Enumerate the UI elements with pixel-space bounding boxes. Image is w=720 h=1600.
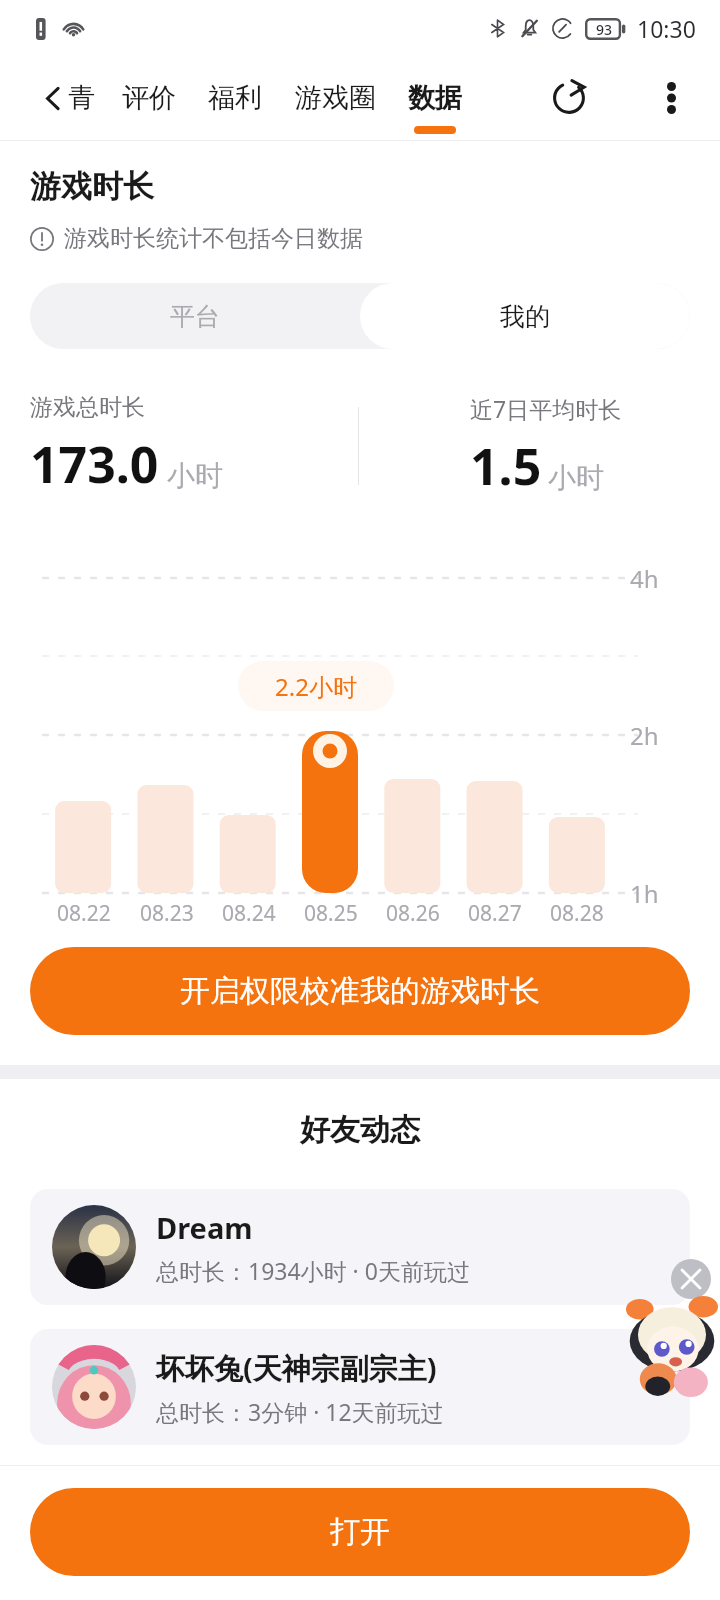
staticText: 数据 [408,81,462,115]
button[interactable]: Back [30,75,76,121]
staticText: 08.24 [222,899,276,928]
button[interactable]: 平台 [30,283,360,349]
button[interactable]: Refresh [542,71,596,125]
staticText: 2h [630,719,659,752]
button[interactable]: More options [648,75,694,121]
button[interactable]: Dream [30,1189,690,1305]
button[interactable]: 游戏圈 [290,61,380,135]
staticText: 小时 [167,458,223,493]
staticText: 173.0 [30,430,159,498]
button[interactable]: 福利 [204,61,266,135]
staticText: 08.27 [468,899,522,928]
staticText: 青 [68,81,95,115]
button[interactable]: 评价 [118,61,180,135]
staticText: 我的 [500,301,550,332]
staticText: 坏坏兔(天神宗副宗主) [156,1348,437,1388]
staticText: 福利 [208,81,262,115]
staticText: 1h [630,877,659,910]
staticText: 08.28 [550,899,604,928]
staticText: 好友动态 [300,1111,420,1149]
staticText: 小时 [548,460,604,495]
button[interactable]: 坏坏兔(天神宗副宗主) [30,1329,690,1445]
staticText: 开启权限校准我的游戏时长 [180,972,540,1010]
button[interactable]: 我的 [360,283,690,349]
staticText: 93 [596,20,613,39]
staticText: 平台 [170,301,220,332]
button[interactable]: Close [671,1259,711,1299]
staticText: 游戏时长统计不包括今日数据 [64,224,363,253]
button[interactable]: Assistant [626,1296,718,1398]
staticText: 08.25 [304,899,358,928]
button[interactable]: 打开 [30,1488,690,1576]
staticText: 08.22 [57,899,111,928]
staticText: 游戏总时长 [30,393,145,422]
staticText: Dream [156,1208,253,1247]
staticText: 08.26 [386,899,440,928]
staticText: 打开 [330,1513,390,1551]
staticText: 1.5 [470,432,542,500]
staticText: 总时长：1934小时 · 0天前玩过 [156,1255,470,1286]
staticText: 4h [630,562,659,595]
staticText: 游戏时长 [30,167,154,206]
button[interactable]: 开启权限校准我的游戏时长 [30,947,690,1035]
staticText: 2.2小时 [275,670,357,703]
staticText: 总时长：3分钟 · 12天前玩过 [156,1396,444,1427]
staticText: 08.23 [140,899,194,928]
staticText: 游戏圈 [295,81,376,115]
staticText: 10:30 [637,13,696,44]
button[interactable]: 数据 [404,61,466,135]
staticText: 评价 [122,81,176,115]
staticText: 近7日平均时长 [470,393,622,424]
